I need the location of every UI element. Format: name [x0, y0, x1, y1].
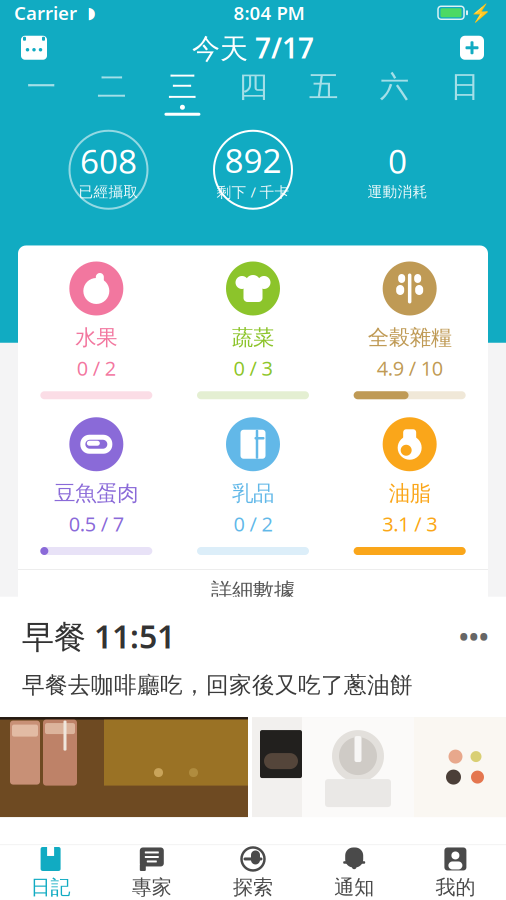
staticText: 3.1 / 3 [382, 510, 437, 537]
button[interactable]: 五 [288, 70, 359, 118]
button[interactable]: More options [452, 619, 496, 653]
staticText: 日 [450, 69, 479, 105]
button[interactable]: 探索 [202, 845, 304, 900]
staticText: 專家 [132, 875, 172, 900]
staticText: 剩下 / 千卡 [216, 182, 289, 202]
staticText: 豆魚蛋肉 [54, 480, 138, 506]
staticText: 六 [380, 69, 409, 105]
button[interactable]: Meal photo 2 [252, 717, 506, 817]
staticText: 0 / 2 [233, 510, 272, 537]
button[interactable]: Add entry [450, 28, 494, 68]
button[interactable]: 豆魚蛋肉 [18, 417, 175, 555]
staticText: ••• [459, 619, 489, 653]
staticText: 0 [388, 139, 407, 183]
staticText: 日記 [31, 875, 71, 900]
staticText: 五 [309, 69, 338, 105]
button[interactable]: 四 [218, 70, 288, 118]
button[interactable]: 一 [6, 70, 77, 118]
staticText: 608 [80, 139, 137, 183]
staticText: Carrier [14, 0, 77, 25]
staticText: 892 [224, 138, 281, 182]
staticText: 一 [27, 69, 56, 105]
button[interactable]: 我的 [405, 845, 506, 900]
staticText: 乳品 [232, 480, 274, 506]
button[interactable]: 詳細數據 [18, 570, 488, 612]
staticText: 油脂 [389, 480, 431, 506]
button[interactable]: 油脂 [331, 417, 488, 555]
staticText: 蔬菜 [232, 324, 274, 351]
staticText: 今天 7/17 [192, 29, 314, 66]
staticText: 水果 [75, 324, 117, 351]
staticText: 0.5 / 7 [69, 510, 124, 537]
staticText: 四 [238, 69, 267, 105]
staticText: 0 / 2 [77, 355, 116, 381]
staticText: 8:04 PM [233, 0, 304, 25]
staticText: 通知 [334, 875, 374, 900]
button[interactable]: 蔬菜 [175, 261, 331, 399]
button[interactable]: Calendar [12, 28, 56, 68]
button[interactable]: 日記 [0, 845, 101, 900]
staticText: 0 / 3 [233, 355, 272, 381]
button[interactable]: Meal photo 1 [0, 717, 248, 817]
button[interactable]: 日 [429, 70, 500, 118]
button[interactable]: 通知 [304, 845, 405, 900]
staticText: ⚡ [470, 3, 492, 23]
staticText: 4.9 / 10 [377, 355, 443, 381]
button[interactable]: 乳品 [175, 417, 331, 555]
staticText: 已經攝取 [78, 183, 138, 201]
staticText: 早餐 11:51 [22, 615, 175, 657]
staticText: 二 [97, 69, 126, 105]
staticText: 全穀雜糧 [368, 324, 452, 351]
staticText: 運動消耗 [367, 183, 427, 201]
button[interactable]: 專家 [101, 845, 202, 900]
staticText: 詳細數據 [211, 578, 295, 604]
staticText: ◗ [87, 4, 95, 22]
button[interactable]: 三 [147, 70, 218, 118]
staticText: 探索 [233, 875, 273, 900]
button[interactable]: 六 [359, 70, 429, 118]
button[interactable]: 水果 [18, 261, 175, 399]
staticText: 三 [168, 69, 197, 105]
staticText: 我的 [435, 875, 475, 900]
button[interactable]: 全穀雜糧 [331, 261, 488, 399]
button[interactable]: 二 [77, 70, 147, 118]
staticText: 早餐去咖啡廳吃，回家後又吃了蔥油餅 [22, 671, 413, 699]
